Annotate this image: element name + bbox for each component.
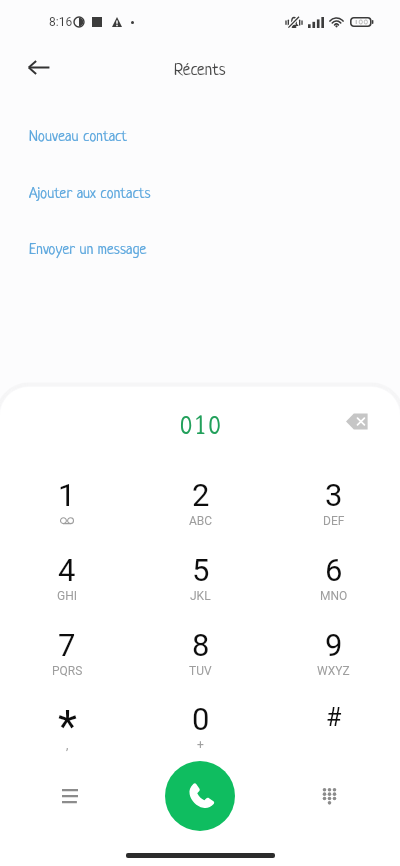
staticText: , [66,738,69,752]
button[interactable]: 6 [267,552,400,608]
staticText: Envoyer un message [29,242,147,259]
button[interactable]: 3 [267,477,400,533]
button[interactable]: Dialpad [307,774,351,818]
staticText: 7 [58,627,76,663]
button[interactable]: Nouveau contact [0,126,400,152]
staticText: Ajouter aux contacts [29,186,151,203]
staticText: * [58,701,77,753]
staticText: GHI [57,589,77,603]
staticText: 6 [325,552,343,588]
staticText: TUV [189,664,212,678]
staticText: PQRS [52,664,83,678]
button[interactable]: * [0,701,134,757]
button[interactable]: 5 [134,552,267,608]
button[interactable]: 0 [134,701,267,757]
staticText: 3 [325,477,343,513]
button[interactable]: Ajouter aux contacts [0,183,400,209]
button[interactable]: 8 [134,627,267,683]
button[interactable]: # [267,701,400,757]
staticText: 2 [192,477,210,513]
button[interactable]: 1 [0,477,134,533]
staticText: 0 [192,701,210,737]
staticText: DEF [323,514,345,528]
staticText: 4 [58,552,76,588]
staticText: WXYZ [317,664,350,678]
staticText: 9 [325,627,343,663]
staticText: 1 [58,477,76,513]
staticText: MNO [320,589,348,603]
button[interactable]: 2 [134,477,267,533]
staticText: 8:16 [49,15,73,29]
button[interactable]: 9 [267,627,400,683]
staticText: Nouveau contact [29,129,128,146]
button[interactable]: 4 [0,552,134,608]
staticText: + [197,738,204,752]
button[interactable]: Backspace [335,399,379,443]
staticText: JKL [190,589,211,603]
staticText: 5 [192,552,210,588]
staticText: Récents [174,61,226,80]
staticText: ABC [189,514,213,528]
staticText: # [326,703,342,732]
staticText: 010 [180,416,225,441]
button[interactable]: Call log [48,774,92,818]
button[interactable]: Call [165,761,235,831]
button[interactable]: Envoyer un message [0,239,400,265]
staticText: 8 [192,627,210,663]
button[interactable]: Back [18,46,60,88]
button[interactable]: 7 [0,627,134,683]
